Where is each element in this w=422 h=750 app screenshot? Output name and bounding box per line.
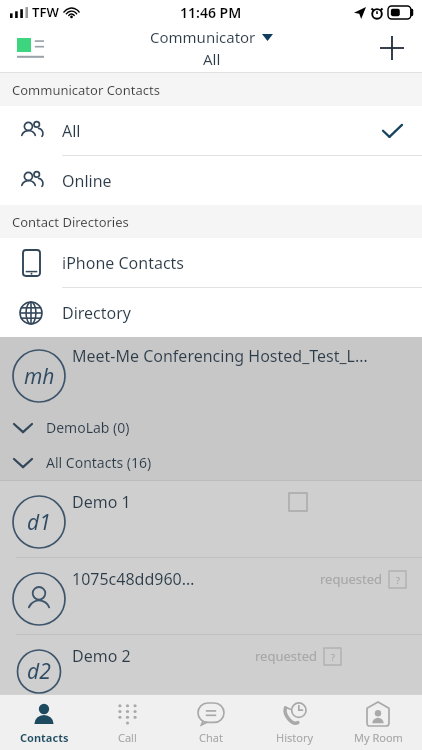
button[interactable]: Communicator <box>150 27 273 69</box>
staticText: 11:46 PM <box>180 3 242 22</box>
button[interactable]: Contacts <box>4 695 84 750</box>
staticText: 1075c48dd9604a6d88b8dec5… <box>72 568 196 590</box>
staticText: Demo 1 <box>72 491 131 513</box>
button[interactable]: Chat <box>171 695 251 750</box>
staticText: requested <box>255 647 318 665</box>
button[interactable]: Info <box>324 648 341 665</box>
staticText: ? <box>396 574 400 586</box>
button[interactable]: Directory <box>0 288 422 337</box>
staticText: Contact Directories <box>12 213 129 231</box>
staticText: All <box>62 120 81 142</box>
button[interactable]: All Contacts (16) <box>0 445 422 480</box>
staticText: requested <box>320 570 383 588</box>
button[interactable]: Info <box>389 571 406 588</box>
staticText: Call <box>118 730 137 745</box>
staticText: DemoLab (0) <box>46 418 130 437</box>
button[interactable]: History <box>255 695 335 750</box>
staticText: All <box>203 49 221 69</box>
staticText: Communicator <box>150 27 256 47</box>
button[interactable]: All <box>0 106 422 155</box>
button[interactable]: Call <box>87 695 167 750</box>
button[interactable]: d2 <box>0 635 422 694</box>
staticText: Online <box>62 170 112 192</box>
button[interactable]: My Room <box>338 695 418 750</box>
staticText: Chat <box>199 730 223 745</box>
staticText: ? <box>331 651 335 663</box>
staticText: Contacts <box>20 730 69 745</box>
button[interactable]: mh <box>0 337 422 410</box>
button[interactable]: Online <box>0 156 422 205</box>
staticText: Demo 2 <box>72 645 131 667</box>
button[interactable]: Select contact <box>289 493 307 511</box>
staticText: My Room <box>354 730 403 745</box>
button[interactable]: d1 <box>0 481 422 557</box>
staticText: Meet-Me Conferencing Hosted_Test_L… <box>72 345 368 367</box>
staticText: mh <box>24 362 55 391</box>
staticText: Communicator Contacts <box>12 81 160 99</box>
staticText: TFW <box>32 3 59 21</box>
button[interactable]: Menu <box>8 26 52 70</box>
staticText: d2 <box>27 657 51 686</box>
button[interactable]: DemoLab (0) <box>0 410 422 445</box>
button[interactable]: iPhone Contacts <box>0 238 422 287</box>
staticText: History <box>276 730 314 745</box>
staticText: d1 <box>27 508 51 537</box>
staticText: Directory <box>62 302 132 324</box>
staticText: iPhone Contacts <box>62 252 185 274</box>
staticText: All Contacts (16) <box>46 453 152 472</box>
button[interactable]: Add <box>370 26 414 70</box>
button[interactable]: 1075c48dd9604a6d88b8dec5… <box>0 558 422 634</box>
